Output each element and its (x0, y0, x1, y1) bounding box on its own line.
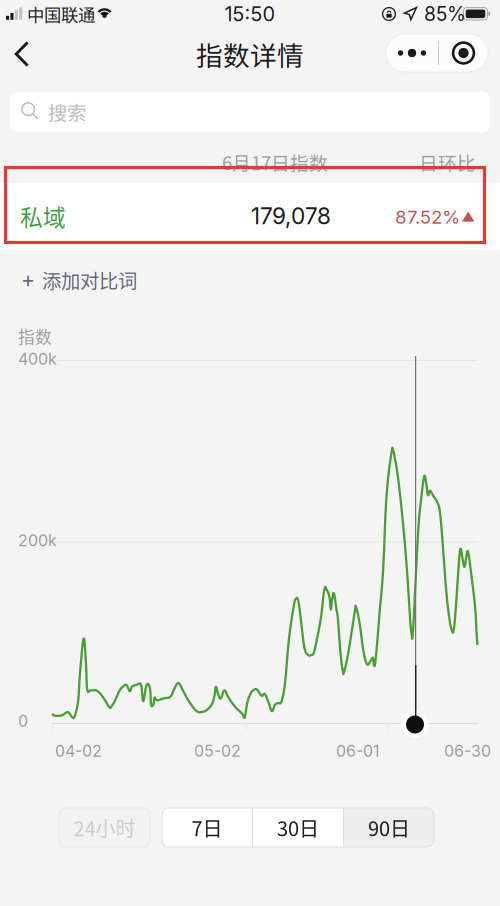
staticText: 87.52% (395, 206, 460, 228)
staticText: 日环比 (419, 148, 476, 175)
staticText: 85% (424, 2, 466, 26)
staticText: + (21, 267, 35, 293)
staticText: 05-02 (194, 741, 241, 761)
button[interactable]: 返回 (0, 31, 45, 77)
staticText: 7日 (191, 813, 222, 842)
staticText: 中国联通 (27, 1, 95, 27)
staticText: 200k (18, 531, 57, 550)
staticText: 指数详情 (196, 35, 304, 73)
staticText: 15:50 (224, 2, 275, 26)
staticText: 私域 (20, 200, 66, 232)
staticText: 搜索 (48, 98, 86, 126)
button[interactable]: + (0, 260, 230, 300)
staticText: 90日 (368, 813, 410, 842)
button[interactable]: 私域 (0, 183, 500, 250)
staticText: 指数 (18, 324, 52, 348)
staticText: 添加对比词 (42, 266, 137, 294)
staticText: 06-01 (336, 741, 380, 761)
staticText: 24小时 (73, 813, 135, 842)
staticText: 400k (18, 349, 57, 369)
button[interactable]: 更多 (386, 34, 438, 72)
staticText: 179,078 (251, 202, 331, 230)
staticText: 30日 (277, 813, 319, 842)
button[interactable]: 30日 (253, 808, 343, 847)
staticText: 06-30 (444, 741, 491, 761)
button[interactable]: 24小时 (59, 808, 150, 847)
staticText: 0 (18, 711, 28, 731)
staticText: 6月17日指数 (222, 148, 328, 175)
staticText: 04-02 (55, 741, 102, 761)
button[interactable]: 90日 (344, 808, 434, 847)
button[interactable]: 7日 (162, 808, 252, 847)
button[interactable]: 关闭 (439, 34, 488, 72)
button[interactable]: 搜索 (10, 92, 490, 132)
